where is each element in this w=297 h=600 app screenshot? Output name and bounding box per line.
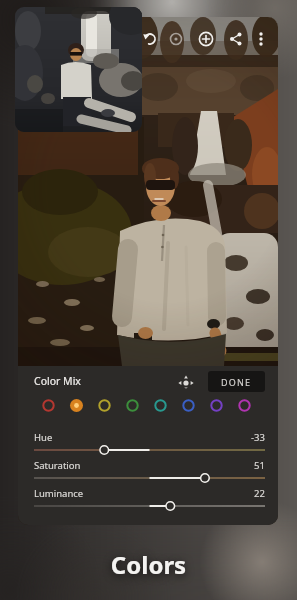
button[interactable]: [98, 399, 111, 412]
staticText: 22: [254, 487, 265, 500]
staticText: Luminance: [34, 487, 84, 500]
button[interactable]: Luminance: [34, 486, 265, 512]
button[interactable]: [141, 29, 159, 47]
button[interactable]: [18, 17, 278, 366]
button[interactable]: Hue: [34, 430, 265, 456]
button[interactable]: Saturation: [34, 458, 265, 484]
staticText: DONE: [221, 376, 252, 388]
button[interactable]: [177, 372, 195, 390]
button[interactable]: [252, 29, 270, 47]
button[interactable]: [167, 29, 185, 47]
button[interactable]: [15, 7, 142, 132]
staticText: Color Mix: [34, 374, 81, 388]
button[interactable]: [210, 399, 223, 412]
staticText: Colors: [0, 548, 297, 581]
staticText: Saturation: [34, 459, 81, 472]
staticText: -33: [251, 431, 265, 444]
staticText: 51: [254, 459, 265, 472]
button[interactable]: [197, 29, 215, 47]
button[interactable]: [227, 29, 245, 47]
button[interactable]: [70, 399, 83, 412]
staticText: Hue: [34, 431, 53, 444]
button[interactable]: DONE: [208, 371, 265, 392]
button[interactable]: [42, 399, 55, 412]
button[interactable]: [238, 399, 251, 412]
button[interactable]: [182, 399, 195, 412]
button[interactable]: [126, 399, 139, 412]
button[interactable]: [154, 399, 167, 412]
